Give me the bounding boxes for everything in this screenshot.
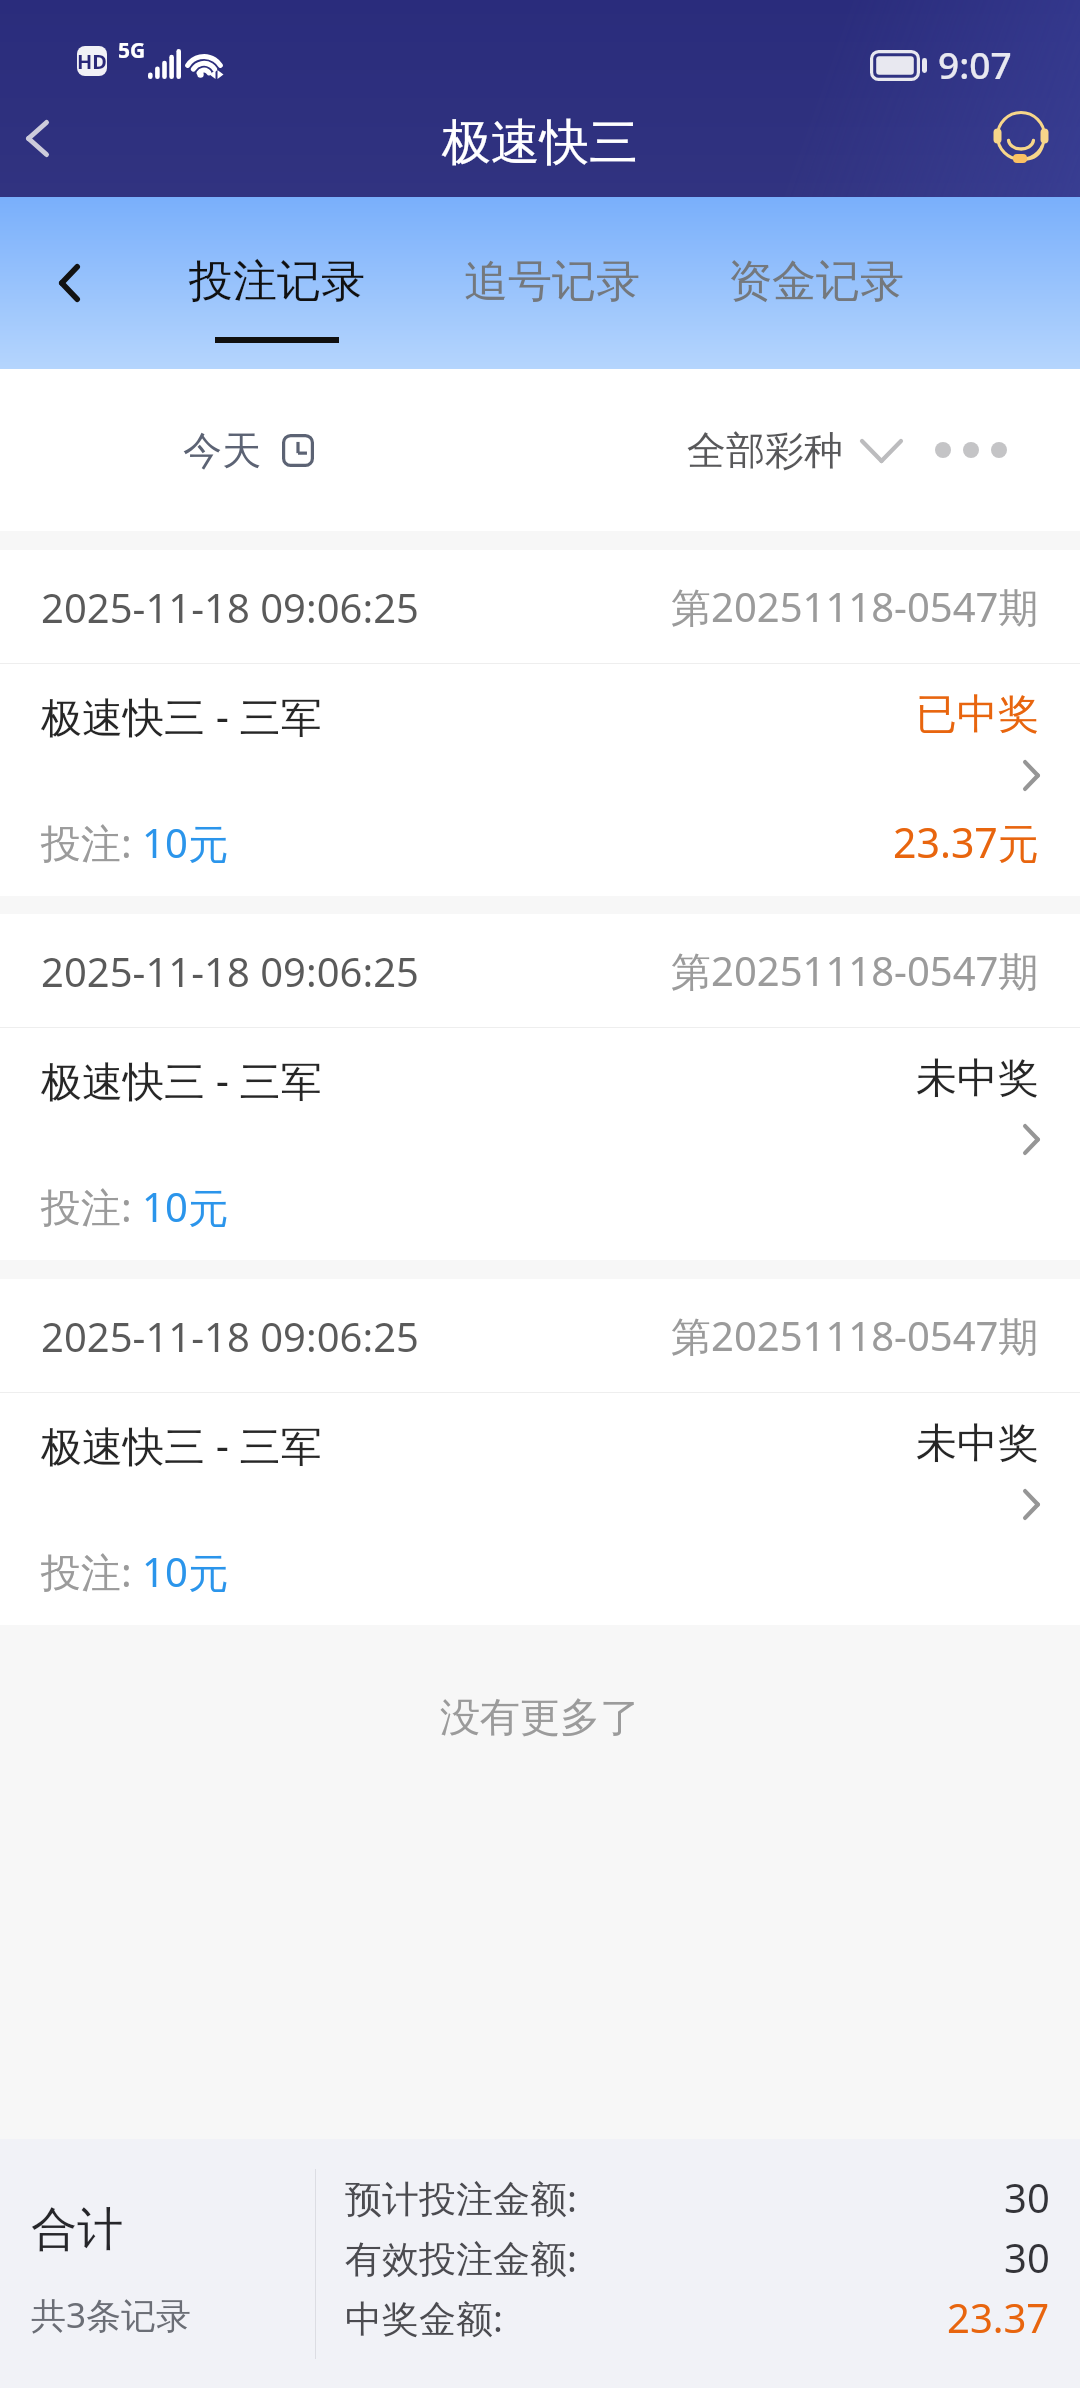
staticText: 30 [1004,2170,1050,2224]
staticText: 资金记录 [728,254,904,309]
staticText: 今天 [183,426,261,475]
button[interactable]: 今天 [171,408,326,493]
staticText: 5G [118,36,146,65]
button[interactable]: Back [25,239,113,327]
staticText: 30 [1004,2230,1050,2284]
staticText: 没有更多了 [440,1692,640,1742]
staticText: 2025-11-18 09:06:25 [41,1309,419,1363]
staticText: 9:07 [938,39,1012,89]
button[interactable]: 投注记录 [177,254,377,343]
staticText: 追号记录 [464,254,640,309]
staticText: 第20251118-0547期 [671,579,1039,634]
staticText: 第20251118-0547期 [671,1308,1039,1363]
staticText: 有效投注金额: [345,2232,577,2283]
staticText: 23.37元 [893,814,1039,870]
staticText: 投注记录 [189,254,365,309]
staticText: 未中奖 [916,1053,1039,1105]
staticText: 全部彩种 [687,426,843,475]
staticText: 2025-11-18 09:06:25 [41,580,419,634]
staticText: 23.37 [947,2290,1050,2344]
staticText: 未中奖 [916,1418,1039,1470]
staticText: 极速快三 - 三军 [41,688,322,744]
button[interactable]: 2025-11-18 09:06:25 [0,1279,1080,1625]
staticText: 投注: 10元 [41,815,228,870]
staticText: 2025-11-18 09:06:25 [41,944,419,998]
button[interactable]: 资金记录 [716,254,916,309]
button[interactable]: 追号记录 [452,254,652,309]
staticText: 极速快三 [442,112,638,174]
button[interactable]: 2025-11-18 09:06:25 [0,550,1080,896]
staticText: 极速快三 - 三军 [41,1417,322,1473]
staticText: 中奖金额: [345,2292,503,2343]
button[interactable]: More options [921,428,1021,472]
staticText: 预计投注金额: [345,2172,577,2223]
button[interactable]: Customer service [982,101,1062,181]
button[interactable]: 全部彩种 [675,408,915,493]
button[interactable]: 2025-11-18 09:06:25 [0,914,1080,1260]
staticText: HD [77,48,107,75]
staticText: 投注: 10元 [41,1544,228,1599]
staticText: 已中奖 [916,689,1039,741]
staticText: 极速快三 - 三军 [41,1052,322,1108]
button[interactable]: Back [0,97,78,179]
staticText: 合计 [31,2201,123,2259]
staticText: 第20251118-0547期 [671,943,1039,998]
staticText: 共3条记录 [31,2291,192,2339]
staticText: 投注: 10元 [41,1179,228,1234]
